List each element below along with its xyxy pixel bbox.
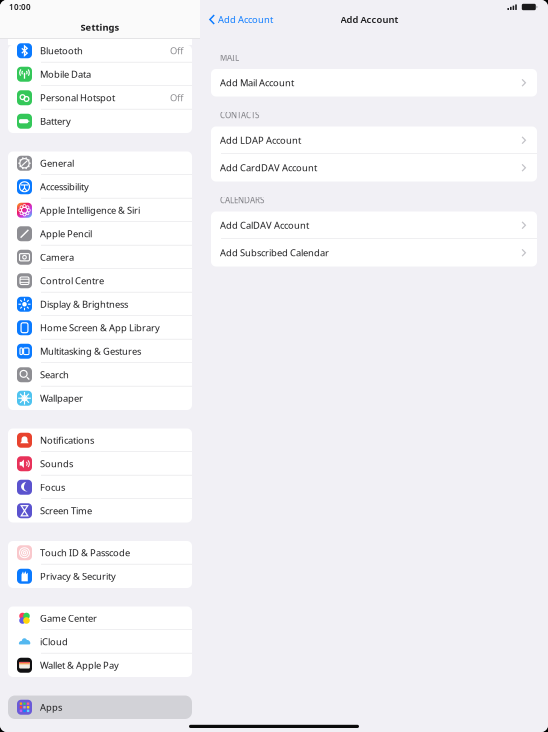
- button[interactable]: Camera: [8, 245, 192, 269]
- button[interactable]: Apple Pencil: [8, 222, 192, 245]
- staticText: Bluetooth: [40, 45, 83, 57]
- button[interactable]: Add Mail Account: [211, 69, 537, 96]
- button[interactable]: Wallet & Apple Pay: [8, 653, 192, 677]
- staticText: Home Screen & App Library: [40, 322, 160, 334]
- staticText: Sounds: [40, 458, 73, 470]
- staticText: Add Account: [218, 13, 273, 26]
- staticText: Off: [170, 45, 183, 57]
- staticText: Add Mail Account: [220, 77, 294, 89]
- staticText: Notifications: [40, 434, 94, 446]
- button[interactable]: Apple Intelligence & Siri: [8, 198, 192, 222]
- staticText: Battery: [40, 115, 71, 127]
- button[interactable]: Add CardDAV Account: [211, 154, 537, 181]
- button[interactable]: Personal Hotspot: [8, 86, 192, 109]
- button[interactable]: Multitasking & Gestures: [8, 339, 192, 363]
- button[interactable]: Add Account: [200, 9, 273, 30]
- button[interactable]: Add Subscribed Calendar: [211, 239, 537, 266]
- staticText: Game Center: [40, 612, 97, 624]
- staticText: Control Centre: [40, 275, 104, 287]
- staticText: Wallpaper: [40, 392, 83, 404]
- staticText: Privacy & Security: [40, 570, 116, 582]
- staticText: Apple Intelligence & Siri: [40, 204, 140, 216]
- button[interactable]: Wallpaper: [8, 386, 192, 410]
- button[interactable]: Control Centre: [8, 269, 192, 292]
- staticText: Focus: [40, 481, 65, 493]
- button[interactable]: Add LDAP Account: [211, 126, 537, 154]
- staticText: Screen Time: [40, 505, 92, 517]
- staticText: Multitasking & Gestures: [40, 345, 141, 357]
- button[interactable]: Bluetooth: [8, 39, 192, 62]
- staticText: Mobile Data: [40, 68, 91, 80]
- staticText: Add Account: [340, 13, 398, 26]
- staticText: Camera: [40, 251, 74, 263]
- button[interactable]: Display & Brightness: [8, 292, 192, 316]
- staticText: General: [40, 157, 74, 169]
- button[interactable]: Apps: [8, 695, 192, 719]
- button[interactable]: Sounds: [8, 452, 192, 475]
- button[interactable]: Privacy & Security: [8, 564, 192, 588]
- staticText: CONTACTS: [220, 110, 259, 120]
- button[interactable]: Screen Time: [8, 499, 192, 522]
- button[interactable]: Focus: [8, 475, 192, 499]
- button[interactable]: Game Center: [8, 606, 192, 630]
- button[interactable]: Accessibility: [8, 175, 192, 198]
- staticText: Add CardDAV Account: [220, 162, 317, 174]
- staticText: CALENDARS: [220, 195, 264, 205]
- staticText: 10:00: [9, 2, 31, 12]
- staticText: Display & Brightness: [40, 298, 128, 310]
- staticText: MAIL: [220, 52, 239, 63]
- staticText: Add Subscribed Calendar: [220, 247, 329, 259]
- staticText: Add LDAP Account: [220, 134, 301, 146]
- button[interactable]: Add CalDAV Account: [211, 211, 537, 239]
- staticText: Add CalDAV Account: [220, 219, 309, 231]
- button[interactable]: Mobile Data: [8, 62, 192, 86]
- staticText: Touch ID & Passcode: [40, 547, 130, 559]
- button[interactable]: Touch ID & Passcode: [8, 541, 192, 564]
- staticText: Personal Hotspot: [40, 92, 115, 104]
- staticText: Apple Pencil: [40, 228, 92, 240]
- staticText: Wallet & Apple Pay: [40, 659, 119, 671]
- button[interactable]: Home Screen & App Library: [8, 316, 192, 339]
- staticText: iCloud: [40, 636, 68, 648]
- staticText: Off: [170, 92, 183, 104]
- button[interactable]: General: [8, 151, 192, 175]
- staticText: Apps: [40, 701, 62, 713]
- staticText: Accessibility: [40, 181, 89, 193]
- button[interactable]: Search: [8, 363, 192, 386]
- staticText: Settings: [80, 21, 119, 33]
- button[interactable]: Battery: [8, 109, 192, 133]
- button[interactable]: Notifications: [8, 428, 192, 452]
- button[interactable]: iCloud: [8, 630, 192, 653]
- staticText: Search: [40, 369, 69, 381]
